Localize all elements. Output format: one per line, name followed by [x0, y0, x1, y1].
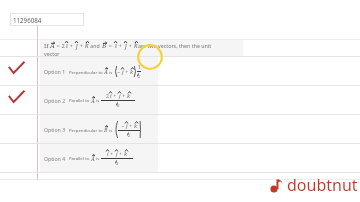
staticText: j	[76, 41, 78, 50]
staticText: k	[127, 92, 131, 99]
button[interactable]: Option 2	[0, 85, 360, 114]
staticText: A	[104, 68, 108, 75]
button[interactable]: Option 3	[0, 114, 360, 143]
staticText: is	[95, 155, 101, 161]
staticText: i	[110, 92, 112, 99]
staticText: 11296084	[13, 16, 42, 24]
other: Tap highlight	[137, 44, 163, 70]
staticText: A	[91, 155, 95, 162]
staticText: +	[112, 92, 118, 99]
staticText: Option 1	[44, 68, 66, 75]
staticText: vector	[44, 50, 60, 56]
staticText: Perpendicular to	[69, 127, 104, 133]
button[interactable]: Option 4	[0, 143, 360, 172]
staticText: i	[107, 150, 109, 157]
staticText: Parallel to	[69, 155, 91, 161]
staticText: 6	[117, 102, 120, 108]
staticText: +	[78, 42, 85, 50]
staticText: Option 2	[44, 97, 66, 104]
staticText: k	[130, 68, 134, 75]
staticText: is	[108, 127, 114, 133]
staticText: +	[121, 92, 127, 99]
staticText: i	[115, 41, 117, 50]
staticText: +	[109, 150, 115, 157]
staticText: Option 4	[44, 155, 66, 162]
staticText: j	[125, 41, 127, 50]
staticText: B	[104, 126, 108, 133]
staticText: A	[91, 97, 95, 104]
staticText: A	[50, 41, 55, 50]
button[interactable]: doubtnut	[269, 174, 358, 196]
staticText: Parallel to	[69, 97, 91, 103]
staticText: +	[68, 42, 75, 50]
staticText: +	[124, 68, 130, 75]
staticText: = 2	[55, 42, 65, 50]
staticText: If	[44, 42, 50, 50]
staticText: j	[122, 68, 124, 75]
staticText: doubtnut	[287, 174, 358, 196]
staticText: is	[108, 69, 114, 75]
staticText: are two vectors, then the unit	[138, 42, 212, 49]
staticText: j	[119, 92, 121, 99]
staticText: +	[127, 42, 134, 50]
staticText: is	[95, 97, 101, 103]
staticText: i	[66, 41, 68, 50]
staticText: −	[121, 122, 125, 129]
staticText: 2	[106, 92, 109, 99]
staticText: Option 3	[44, 126, 66, 133]
staticText: j	[116, 150, 118, 157]
staticText: +	[118, 150, 124, 157]
staticText: −	[117, 68, 121, 75]
staticText: 1	[138, 64, 141, 70]
staticText: 2	[128, 132, 131, 138]
button[interactable]: Option 1	[0, 56, 360, 85]
button[interactable]: 11296084	[10, 13, 84, 26]
staticText: +	[117, 42, 124, 50]
staticText: k	[134, 41, 138, 50]
staticText: B	[102, 41, 107, 50]
staticText: Perpendicular to	[69, 69, 104, 75]
staticText: +	[128, 122, 134, 129]
staticText: =	[107, 42, 114, 50]
staticText: k	[134, 122, 138, 129]
staticText: and	[89, 42, 102, 49]
staticText: j	[126, 122, 128, 129]
staticText: k	[124, 150, 128, 157]
staticText: 3	[116, 160, 119, 166]
staticText: 2	[138, 73, 140, 79]
staticText: k	[85, 41, 89, 50]
